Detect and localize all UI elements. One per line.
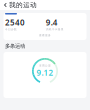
- staticText: 9.12: [36, 67, 53, 78]
- staticText: 查看更多: [39, 34, 51, 37]
- staticText: 本周公里: [39, 64, 51, 67]
- staticText: 今日步数: [5, 28, 17, 31]
- staticText: 2540: [5, 17, 25, 28]
- staticText: 9.4: [46, 17, 58, 28]
- staticText: 我的运动: [9, 1, 37, 9]
- staticText: 消耗千卡路里: [46, 28, 64, 31]
- button[interactable]: 查看更多: [3, 34, 86, 40]
- staticText: 多条运动: [5, 43, 25, 49]
- button[interactable]: Back: [3, 0, 7, 9]
